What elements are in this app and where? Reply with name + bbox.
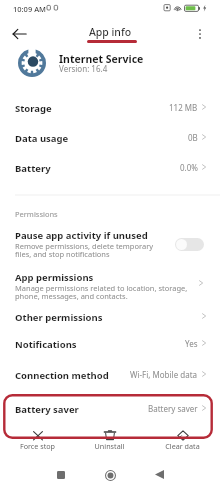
staticText: 0B [188, 132, 198, 143]
staticText: Battery [15, 162, 51, 175]
button[interactable]: Home [98, 463, 122, 487]
staticText: 112 MB [169, 102, 198, 113]
staticText: Wi-Fi, Mobile data [130, 369, 198, 380]
staticText: Storage [15, 102, 52, 115]
staticText: Version: 16.4 [59, 63, 108, 74]
button[interactable]: Recents [49, 463, 73, 487]
staticText: Data usage [15, 132, 69, 145]
staticText: Battery saver [148, 403, 198, 414]
button[interactable]: App permissions [0, 266, 220, 302]
staticText: Uninstall [73, 441, 146, 451]
staticText: Internet Service [59, 52, 144, 66]
button[interactable]: Battery [0, 156, 220, 178]
staticText: App info [0, 25, 220, 39]
staticText: Pause app activity if unused [15, 229, 148, 242]
staticText: Remove permissions, delete temporary fil… [15, 241, 154, 259]
staticText: 10:09 AM [13, 4, 46, 14]
staticText: Manage permissions related to location, … [15, 283, 188, 301]
button[interactable]: Force stop [1, 426, 74, 452]
staticText: Battery saver [15, 403, 79, 416]
button[interactable]: Pause app activity if unused [0, 224, 220, 262]
staticText: Yes [185, 338, 198, 349]
button[interactable]: Uninstall [73, 426, 146, 452]
button[interactable]: Notifications [0, 332, 220, 354]
staticText: Clear data [146, 441, 219, 451]
button[interactable]: Battery saver [0, 397, 220, 419]
staticText: Force stop [1, 441, 74, 451]
button[interactable]: Data usage [0, 126, 220, 148]
staticText: App permissions [15, 271, 94, 284]
staticText: Notifications [15, 338, 77, 351]
button[interactable]: Clear data [146, 426, 219, 452]
button[interactable]: Back [8, 22, 32, 46]
button[interactable]: Connection method [0, 363, 220, 385]
staticText: Other permissions [15, 311, 103, 324]
button[interactable]: Back [147, 462, 171, 486]
button[interactable]: More options [188, 22, 212, 46]
staticText: Permissions [15, 209, 58, 219]
staticText: Connection method [15, 369, 109, 382]
staticText: 0.0% [180, 162, 198, 173]
button[interactable]: Storage [0, 96, 220, 118]
button[interactable]: Other permissions [0, 305, 220, 327]
